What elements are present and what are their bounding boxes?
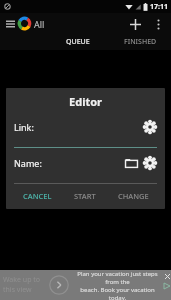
staticText: CHANGE — [118, 191, 149, 201]
staticText: CANCEL — [23, 191, 52, 201]
button[interactable]: Close ad — [164, 273, 171, 280]
staticText: Wake up to — [3, 275, 41, 285]
staticText: START — [74, 191, 96, 201]
button[interactable]: START — [61, 186, 109, 206]
button[interactable]: CHANGE — [109, 186, 157, 206]
button[interactable]: Name settings — [143, 156, 157, 170]
button[interactable]: Add — [126, 15, 144, 33]
staticText: Name: — [14, 157, 42, 169]
staticText: All — [34, 18, 45, 30]
button[interactable]: More options — [150, 16, 166, 32]
staticText: this view — [3, 285, 32, 295]
button[interactable]: CANCEL — [14, 186, 61, 206]
button[interactable]: Link settings — [143, 120, 157, 134]
button[interactable]: Browse folder — [125, 157, 138, 170]
staticText: Plan your vacation just steps from the — [72, 270, 163, 286]
staticText: FINISHED — [124, 37, 157, 47]
button[interactable]: QUEUE — [47, 34, 109, 50]
staticText: Editor — [69, 94, 102, 109]
staticText: Link: — [14, 121, 34, 133]
staticText: QUEUE — [66, 37, 90, 47]
staticText: beach. Book your vacation today. — [72, 286, 163, 300]
button[interactable]: Open navigation menu — [3, 17, 17, 31]
button[interactable]: FINISHED — [109, 34, 171, 50]
button[interactable]: Next ad — [49, 275, 69, 295]
staticText: 17:11 — [150, 2, 168, 12]
